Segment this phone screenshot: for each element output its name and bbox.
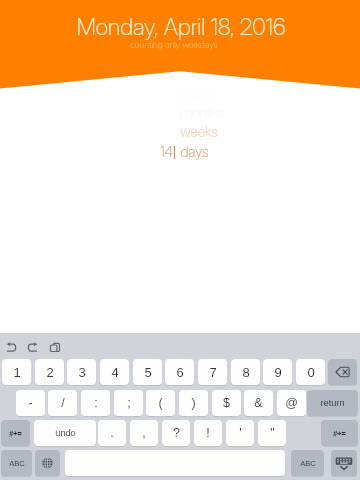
button[interactable]: 8 — [231, 359, 260, 385]
staticText: $ — [223, 396, 230, 410]
button[interactable]: Undo — [4, 339, 20, 355]
button[interactable]: - — [16, 390, 45, 416]
button[interactable]: $ — [212, 390, 241, 416]
staticText: 4 — [111, 365, 119, 380]
staticText: 3 — [78, 365, 86, 380]
staticText: days — [180, 143, 209, 160]
staticText: , — [142, 426, 146, 440]
button[interactable]: " — [258, 420, 286, 446]
button[interactable]: , — [130, 420, 158, 446]
button[interactable]: Change keyboard — [35, 450, 60, 476]
button[interactable]: 0 — [296, 359, 325, 385]
staticText: 14 — [160, 143, 173, 160]
staticText: undo — [55, 428, 76, 438]
staticText: 6 — [176, 365, 184, 380]
staticText: ' — [239, 426, 242, 440]
staticText: 1 — [13, 365, 21, 380]
button[interactable]: ABC — [291, 450, 324, 476]
button[interactable]: 7 — [198, 359, 227, 385]
staticText: ! — [206, 426, 210, 440]
button[interactable]: ) — [179, 390, 208, 416]
button[interactable]: #+= — [321, 420, 358, 446]
button[interactable]: ! — [194, 420, 222, 446]
staticText: ( — [158, 396, 163, 410]
button[interactable]: 1 — [2, 359, 31, 385]
staticText: 7 — [209, 365, 217, 380]
button[interactable]: & — [244, 390, 273, 416]
button[interactable]: 3 — [67, 359, 96, 385]
button[interactable]: / — [48, 390, 77, 416]
button[interactable]: @ — [277, 390, 306, 416]
staticText: ; — [127, 396, 131, 410]
staticText: return — [320, 398, 345, 408]
staticText: 0 — [307, 365, 315, 380]
staticText: months — [180, 104, 225, 121]
button[interactable]: ABC — [1, 450, 32, 476]
staticText: weeks — [180, 123, 218, 140]
button[interactable]: ( — [146, 390, 175, 416]
staticText: #+= — [9, 429, 22, 437]
staticText: 2 — [46, 365, 54, 380]
staticText: counting only workdays — [130, 39, 218, 50]
staticText: ABC — [9, 459, 25, 467]
button[interactable]: Paste — [46, 339, 62, 355]
button[interactable]: undo — [34, 420, 96, 446]
staticText: " — [270, 426, 275, 440]
button[interactable]: Hide keyboard — [331, 450, 357, 476]
button[interactable]: ? — [162, 420, 190, 446]
staticText: Monday, April 18, 2016 — [76, 13, 286, 41]
button[interactable]: 9 — [263, 359, 292, 385]
staticText: - — [28, 396, 33, 410]
button[interactable]: Backspace — [328, 359, 357, 385]
staticText: ABC — [300, 459, 316, 467]
button[interactable]: Redo — [24, 339, 40, 355]
staticText: ) — [191, 396, 196, 410]
button[interactable]: 4 — [100, 359, 129, 385]
staticText: 5 — [144, 365, 152, 380]
button[interactable]: 6 — [165, 359, 194, 385]
staticText: / — [61, 396, 65, 410]
staticText: ? — [173, 426, 180, 440]
staticText: 8 — [242, 365, 250, 380]
button[interactable]: 2 — [35, 359, 64, 385]
staticText: @ — [285, 396, 298, 410]
staticText: #+= — [333, 429, 346, 437]
staticText: : — [94, 396, 98, 410]
button[interactable]: return — [307, 390, 358, 416]
button[interactable]: ' — [226, 420, 254, 446]
staticText: & — [254, 396, 263, 410]
staticText: . — [110, 426, 114, 440]
button[interactable]: #+= — [1, 420, 30, 446]
button[interactable]: . — [98, 420, 126, 446]
button[interactable]: ; — [114, 390, 143, 416]
button[interactable]: 5 — [133, 359, 162, 385]
staticText: 9 — [274, 365, 282, 380]
button[interactable]: : — [81, 390, 110, 416]
